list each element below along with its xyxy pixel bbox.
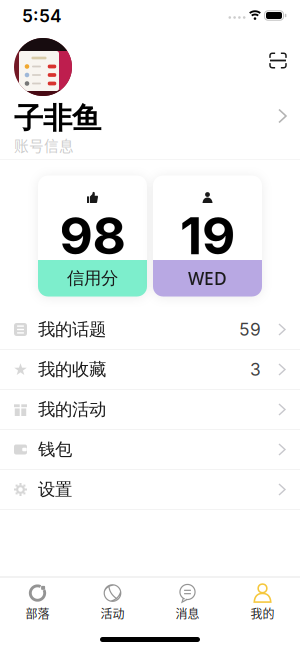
staticText: 5:54 xyxy=(22,5,62,26)
staticText: 信用分 xyxy=(67,267,118,289)
staticText: 3 xyxy=(250,359,261,380)
button[interactable]: 部落 xyxy=(0,583,75,623)
staticText: 我的收藏 xyxy=(38,359,106,380)
staticText: 98 xyxy=(59,204,125,266)
staticText: 我的话题 xyxy=(38,319,106,340)
staticText: 钱包 xyxy=(38,439,72,460)
button[interactable]: 消息 xyxy=(150,583,225,623)
staticText: 子非鱼 xyxy=(14,100,101,137)
button[interactable]: 活动 xyxy=(75,583,150,623)
button[interactable]: Profile photo xyxy=(14,38,72,96)
button[interactable]: 我的 xyxy=(225,583,300,623)
button[interactable]: 98 xyxy=(38,175,147,296)
button[interactable]: 钱包 xyxy=(0,430,300,470)
button[interactable]: Scan xyxy=(266,48,290,72)
staticText: WED xyxy=(188,266,227,290)
staticText: 消息 xyxy=(175,605,199,622)
button[interactable]: 19 xyxy=(153,175,262,296)
button[interactable]: 设置 xyxy=(0,470,300,510)
button[interactable]: 我的活动 xyxy=(0,390,300,430)
button[interactable]: 我的收藏 xyxy=(0,350,300,390)
staticText: 我的活动 xyxy=(38,399,106,420)
staticText: 账号信息 xyxy=(14,134,74,156)
staticText: 19 xyxy=(180,204,235,266)
staticText: 设置 xyxy=(38,479,72,500)
staticText: 59 xyxy=(239,319,261,340)
button[interactable]: 我的话题 xyxy=(0,310,300,350)
button[interactable]: 子非鱼 xyxy=(0,96,300,136)
staticText: 活动 xyxy=(100,605,124,622)
staticText: 我的 xyxy=(250,605,274,622)
staticText: 部落 xyxy=(25,605,49,622)
